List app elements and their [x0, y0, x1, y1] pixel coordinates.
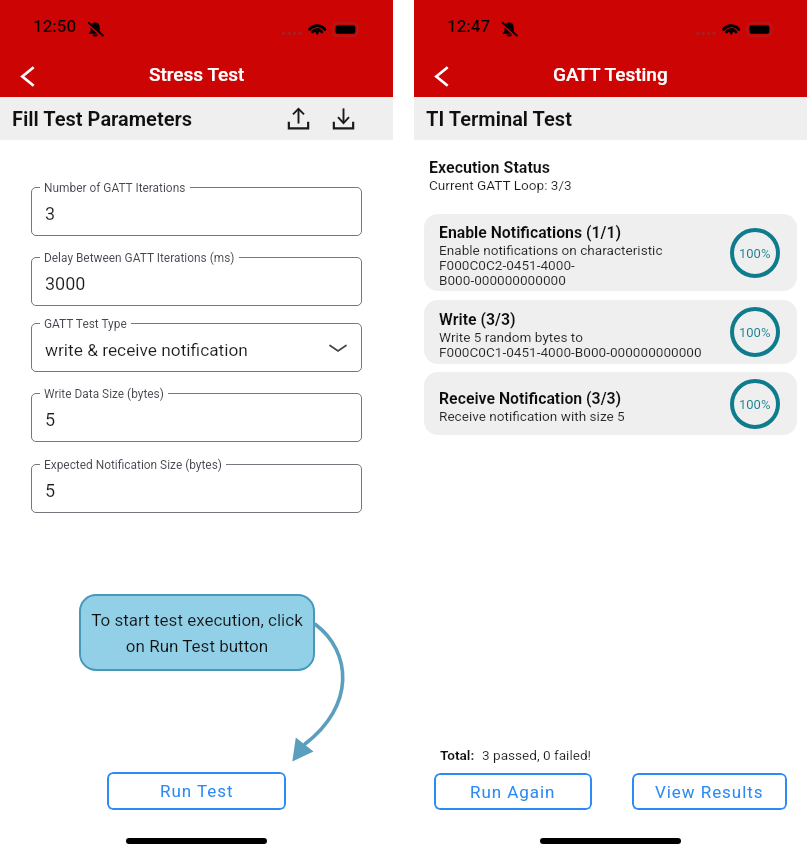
button[interactable]: Enable Notifications (1/1) [424, 214, 797, 291]
staticText: View Results [655, 782, 764, 802]
staticText: Receive notification with size 5 [439, 408, 625, 424]
button[interactable]: Upload [282, 102, 315, 135]
button[interactable] [31, 257, 362, 306]
staticText: 100% [739, 397, 771, 412]
button[interactable]: Back [6, 52, 50, 96]
staticText: Enable Notifications (1/1) [439, 223, 622, 242]
staticText: 100% [739, 246, 771, 261]
button[interactable]: Run Test [107, 772, 286, 810]
button[interactable]: Download [327, 102, 360, 135]
button[interactable] [31, 393, 362, 442]
staticText: Delay Between GATT Iterations (ms) [44, 251, 235, 265]
staticText: write & receive notification [45, 340, 248, 360]
button[interactable]: Write (3/3) [424, 300, 797, 364]
staticText: 3 passed, 0 failed! [482, 747, 592, 763]
button[interactable]: Back [420, 52, 464, 96]
staticText: 12:47 [447, 16, 491, 36]
staticText: Total: [440, 747, 475, 763]
staticText: 5 [45, 480, 56, 501]
staticText: Current GATT Loop: 3/3 [429, 177, 572, 193]
staticText: Number of GATT Iterations [44, 181, 186, 195]
staticText: 3 [45, 203, 56, 224]
staticText: Write 5 random bytes to F000C0C1-0451-40… [439, 329, 702, 360]
staticText: GATT Testing [553, 63, 668, 85]
staticText: Run Again [470, 782, 556, 802]
button[interactable] [31, 323, 362, 372]
button[interactable]: Run Again [434, 773, 592, 810]
button[interactable] [31, 464, 362, 513]
staticText: Fill Test Parameters [12, 107, 193, 130]
button[interactable]: Receive Notification (3/3) [424, 372, 797, 435]
staticText: Receive Notification (3/3) [439, 389, 622, 408]
staticText: 3000 [45, 273, 86, 294]
staticText: GATT Test Type [44, 317, 127, 331]
button[interactable] [31, 187, 362, 236]
staticText: Write Data Size (bytes) [44, 387, 164, 401]
staticText: 12:50 [33, 16, 77, 36]
staticText: Expected Notification Size (bytes) [44, 458, 222, 472]
staticText: Enable notifications on characteristic F… [439, 242, 663, 288]
staticText: To start test execution, click on Run Te… [79, 610, 315, 656]
staticText: TI Terminal Test [426, 107, 572, 130]
staticText: Run Test [160, 781, 234, 801]
staticText: Write (3/3) [439, 310, 516, 329]
staticText: Execution Status [429, 158, 550, 177]
staticText: 100% [739, 325, 771, 340]
button[interactable]: View Results [632, 773, 787, 810]
staticText: 5 [45, 409, 56, 430]
staticText: Stress Test [149, 63, 245, 85]
